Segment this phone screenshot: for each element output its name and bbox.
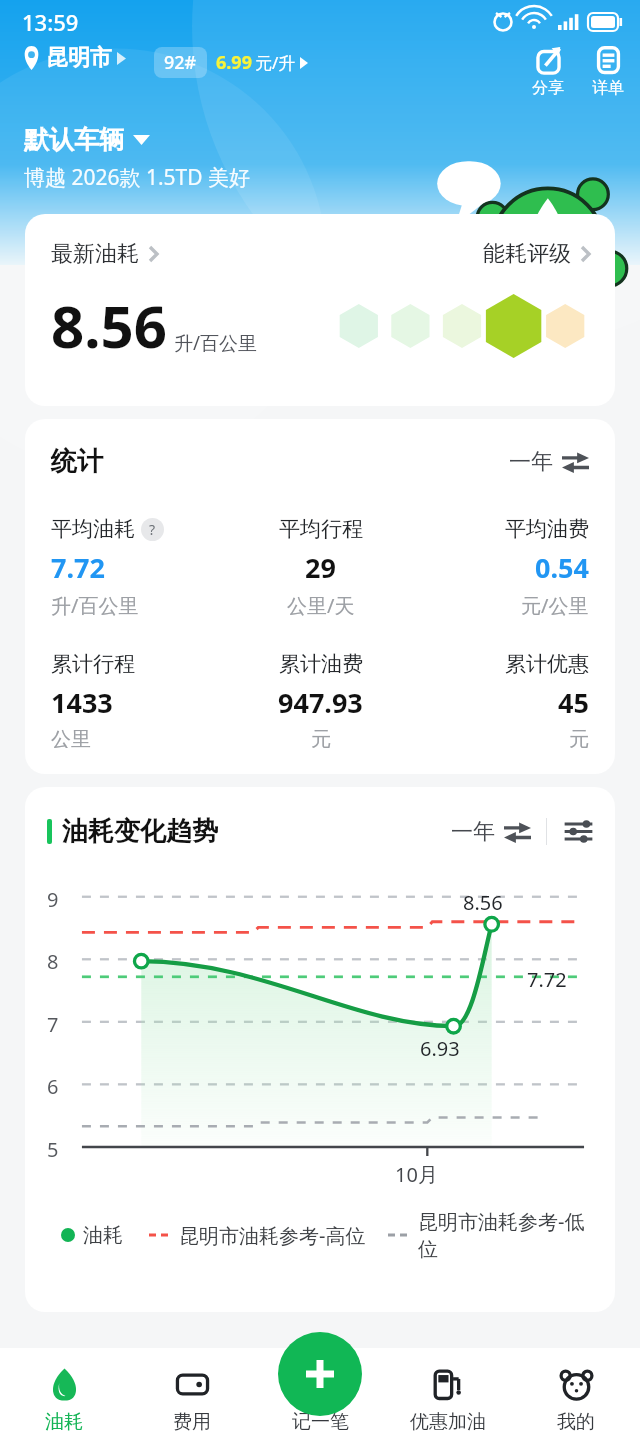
staticText: 9 xyxy=(47,886,59,913)
staticText: 10月 xyxy=(395,1161,438,1188)
staticText: 平均油费 xyxy=(505,516,589,542)
button[interactable]: 最新油耗 xyxy=(51,240,159,268)
staticText: 默认车辆 xyxy=(24,124,124,155)
staticText: 油耗 xyxy=(45,1410,83,1434)
staticText: 元 xyxy=(311,727,331,748)
button[interactable]: 油耗 xyxy=(0,1348,128,1452)
staticText: 6.99 xyxy=(216,50,252,75)
staticText: 公里 xyxy=(51,727,91,748)
staticText: 13:59 xyxy=(22,7,79,37)
staticText: 油耗变化趋势 xyxy=(62,815,218,848)
staticText: 一年 xyxy=(451,818,495,846)
staticText: 分享 xyxy=(532,78,564,98)
button[interactable]: 费用 xyxy=(128,1348,256,1452)
staticText: 记一笔 xyxy=(292,1410,349,1434)
staticText: 1433 xyxy=(51,684,113,721)
staticText: 博越 2026款 1.5TD 美好 xyxy=(24,163,251,192)
staticText: 公里/天 xyxy=(287,592,355,619)
staticText: 平均行程 xyxy=(279,516,363,542)
button[interactable]: 我的 xyxy=(512,1348,640,1452)
staticText: 平均油耗 xyxy=(51,516,135,542)
staticText: 昆明市油耗参考-高位 xyxy=(179,1222,366,1249)
staticText: 5 xyxy=(47,1136,59,1163)
button[interactable]: 图表设置 xyxy=(562,819,595,844)
button[interactable]: 优惠加油 xyxy=(384,1348,512,1452)
staticText: 详单 xyxy=(592,78,624,98)
staticText: 29 xyxy=(305,549,336,586)
staticText: 92# xyxy=(164,50,197,75)
staticText: 一年 xyxy=(509,448,553,476)
staticText: 累计优惠 xyxy=(505,651,589,677)
staticText: 最新油耗 xyxy=(51,240,139,268)
staticText: 7.72 xyxy=(527,966,567,993)
staticText: 7.72 xyxy=(51,549,105,586)
staticText: 947.93 xyxy=(278,684,363,721)
staticText: 元 xyxy=(569,727,589,748)
button[interactable]: 一年 xyxy=(509,448,589,476)
staticText: 元/升 xyxy=(255,51,296,74)
staticText: 8 xyxy=(47,948,59,975)
staticText: 0.54 xyxy=(535,549,589,586)
staticText: 6.93 xyxy=(420,1035,460,1062)
button[interactable]: 详单 xyxy=(592,44,624,98)
staticText: 6 xyxy=(47,1073,59,1100)
staticText: 油耗 xyxy=(83,1223,123,1248)
staticText: 统计 xyxy=(51,445,103,478)
staticText: 升/百公里 xyxy=(174,330,258,356)
button[interactable]: 昆明市 xyxy=(22,44,126,72)
staticText: 累计行程 xyxy=(51,651,135,677)
staticText: 能耗评级 xyxy=(483,240,571,268)
button[interactable]: 记一笔 xyxy=(278,1332,362,1416)
staticText: 昆明市油耗参考-低位 xyxy=(418,1208,595,1262)
staticText: 8.56 xyxy=(463,889,503,916)
staticText: ? xyxy=(149,520,156,539)
button[interactable]: 能耗评级 xyxy=(483,240,591,268)
staticText: 优惠加油 xyxy=(410,1410,486,1434)
staticText: 累计油费 xyxy=(279,651,363,677)
staticText: 升/百公里 xyxy=(51,592,139,619)
button[interactable]: 分享 xyxy=(532,44,564,98)
staticText: 元/公里 xyxy=(521,592,589,619)
staticText: 8.56 xyxy=(51,286,167,365)
button[interactable]: 默认车辆 xyxy=(24,124,150,155)
button[interactable]: 一年 xyxy=(451,818,531,846)
staticText: 45 xyxy=(558,684,589,721)
staticText: 昆明市 xyxy=(46,44,112,72)
staticText: 费用 xyxy=(173,1410,211,1434)
button[interactable]: 说明 xyxy=(141,518,164,541)
staticText: 7 xyxy=(47,1011,59,1038)
button[interactable]: 92# xyxy=(154,44,308,78)
staticText: 我的 xyxy=(557,1410,595,1434)
